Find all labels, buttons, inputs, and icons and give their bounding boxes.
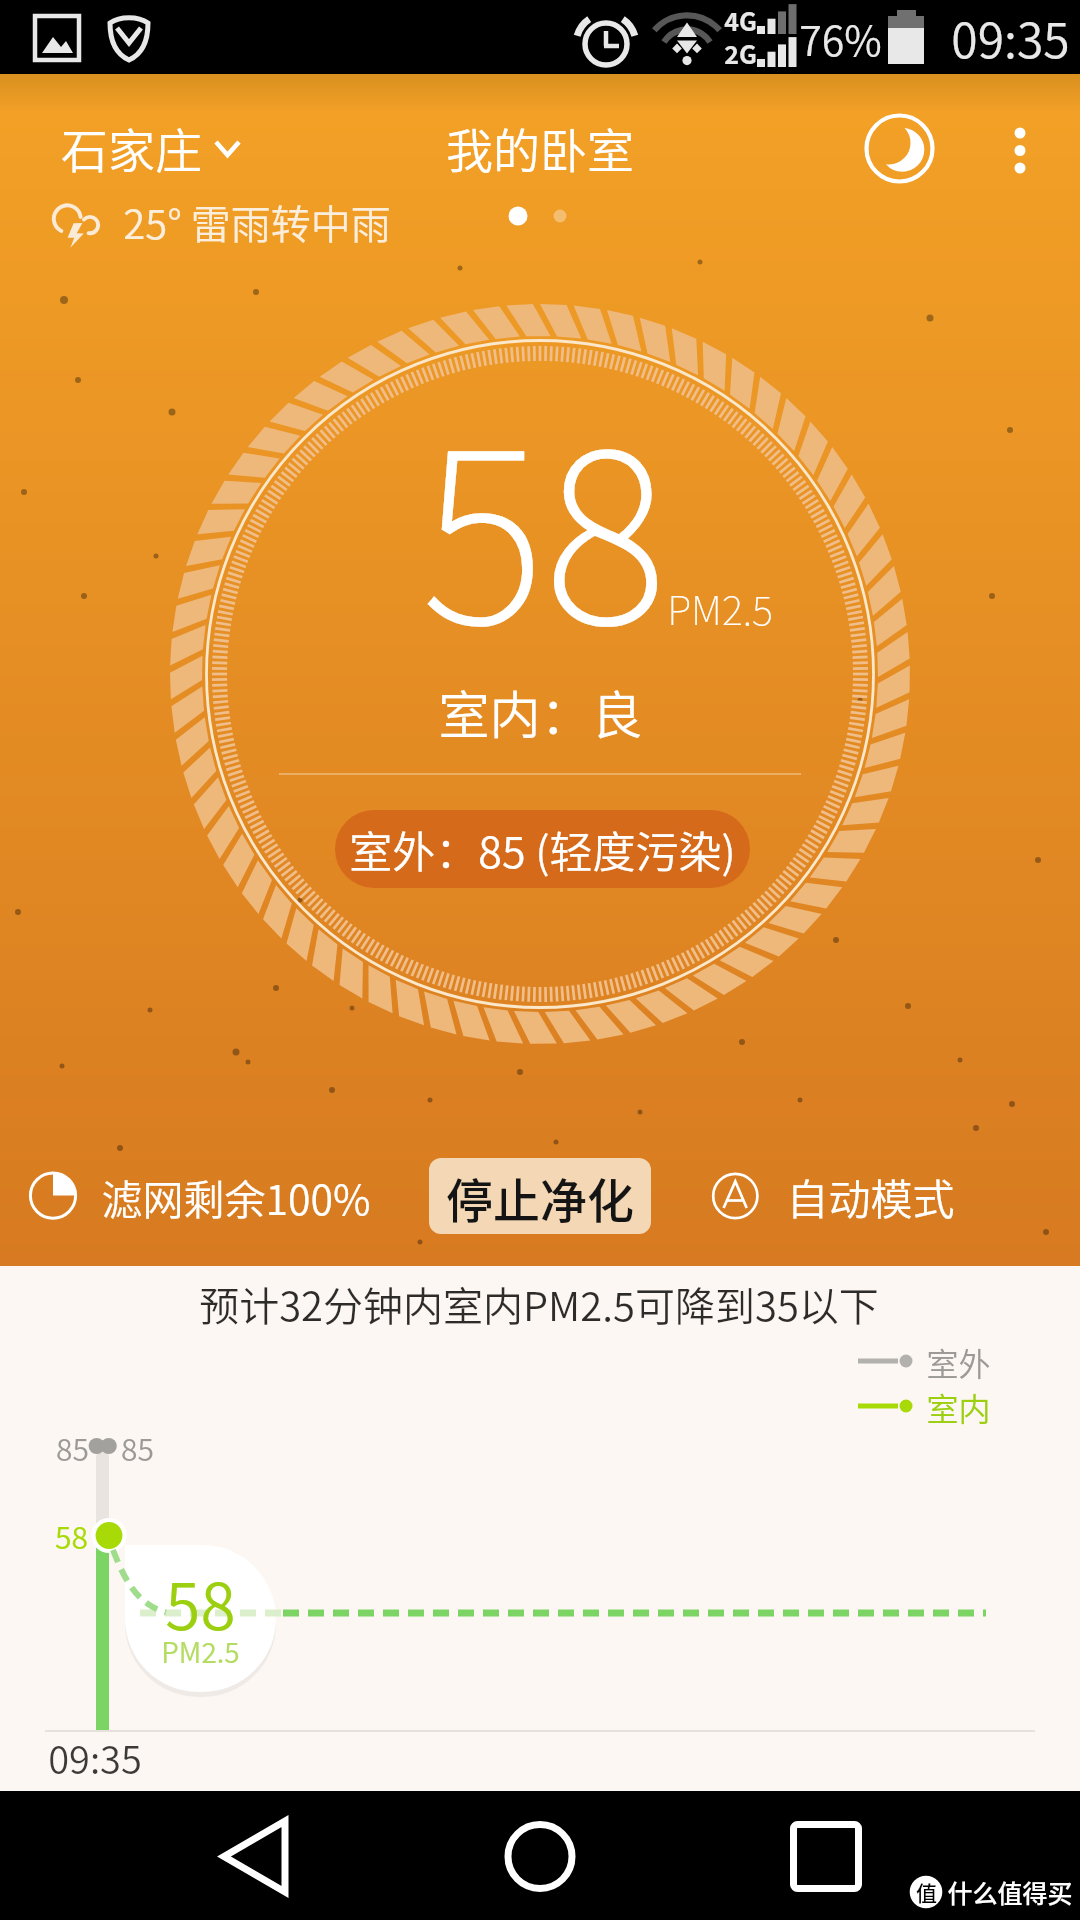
staticText: 室外：85 (轻度污染): [349, 818, 736, 880]
staticText: 58: [422, 350, 667, 690]
staticText: 预计32分钟内室内PM2.5可降到35以下: [199, 1275, 879, 1333]
button[interactable]: 返回: [190, 1800, 320, 1912]
staticText: 停止净化: [446, 1163, 634, 1231]
staticText: 我的卧室: [446, 113, 634, 181]
button[interactable]: 选择城市 石家庄: [40, 110, 255, 190]
staticText: 58: [165, 1556, 236, 1649]
staticText: 85: [121, 1426, 154, 1469]
staticText: PM2.5: [161, 1631, 240, 1672]
staticText: 58: [55, 1514, 88, 1557]
staticText: 25° 雷雨转中雨: [123, 193, 391, 251]
staticText: 滤网剩余100%: [101, 1167, 371, 1226]
button[interactable]: 最近任务: [760, 1800, 890, 1912]
button[interactable]: 主屏幕: [476, 1800, 606, 1912]
staticText: 室外: [926, 1339, 991, 1385]
button[interactable]: 天气 25度 雷雨转中雨: [40, 195, 410, 257]
staticText: 室内：良: [438, 675, 643, 749]
button[interactable]: 切换设备: [496, 196, 582, 236]
button[interactable]: 夜间模式: [858, 104, 946, 192]
staticText: 室内: [926, 1384, 991, 1430]
staticText: 76%: [799, 8, 882, 67]
staticText: PM2.5: [667, 579, 773, 637]
button[interactable]: 停止净化: [429, 1158, 651, 1234]
staticText: 4G: [724, 2, 757, 38]
button[interactable]: 我的卧室: [430, 110, 650, 190]
staticText: 09:35: [48, 1730, 142, 1785]
staticText: 石家庄: [61, 113, 202, 181]
staticText: 85: [56, 1426, 89, 1469]
button[interactable]: 更多选项: [982, 104, 1058, 192]
button[interactable]: 自动模式: [706, 1150, 956, 1242]
staticText: 值: [916, 1877, 937, 1907]
staticText: 自动模式: [786, 1166, 955, 1227]
staticText: 09:35: [951, 2, 1070, 72]
staticText: 2G: [724, 35, 757, 71]
button[interactable]: 滤网剩余100%: [24, 1150, 384, 1242]
staticText: 58: [422, 350, 667, 690]
staticText: 什么值得买: [947, 1874, 1073, 1910]
